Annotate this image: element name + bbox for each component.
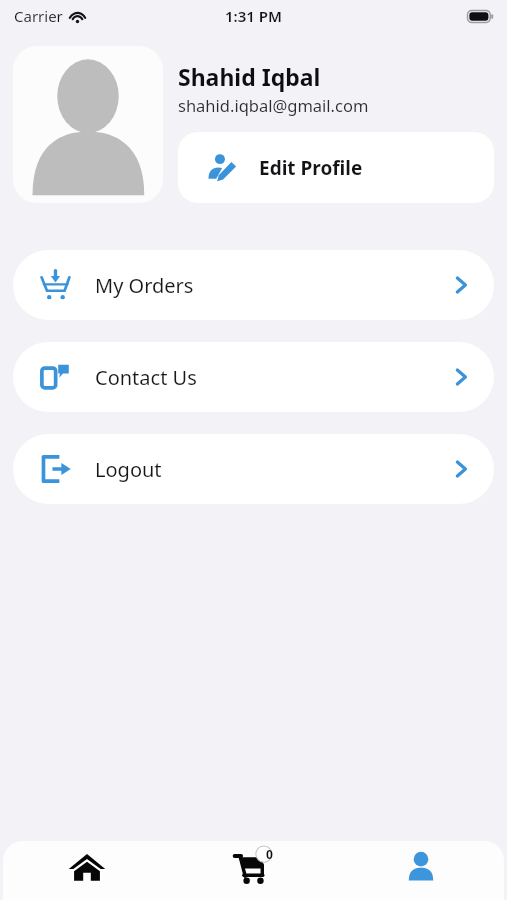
button[interactable]: My Orders xyxy=(13,250,494,320)
staticText: 1:31 PM xyxy=(225,6,282,26)
staticText: Edit Profile xyxy=(259,155,363,181)
staticText: Contact Us xyxy=(95,364,448,391)
button[interactable]: Cart, 0 items xyxy=(170,841,337,900)
staticText: Logout xyxy=(95,456,448,483)
button[interactable]: Contact Us xyxy=(13,342,494,412)
button[interactable]: Profile photo xyxy=(13,46,163,203)
button[interactable]: Profile xyxy=(337,841,504,900)
staticText: My Orders xyxy=(95,272,448,299)
button[interactable]: Logout xyxy=(13,434,494,504)
staticText: Shahid Iqbal xyxy=(178,61,321,92)
button[interactable]: Home xyxy=(3,841,170,900)
staticText: shahid.iqbal@gmail.com xyxy=(178,94,369,116)
button[interactable]: Edit Profile xyxy=(178,132,494,203)
staticText: 0 xyxy=(266,846,273,862)
staticText: Carrier xyxy=(14,6,63,26)
